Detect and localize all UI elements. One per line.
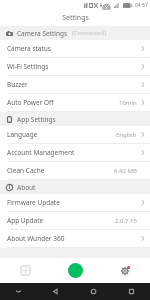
staticText: Firmware Update — [7, 198, 60, 207]
button[interactable]: Albums — [0, 258, 50, 283]
staticText: 2.0.7.15 — [115, 217, 137, 225]
staticText: App Update — [7, 216, 44, 225]
button[interactable]: Wi-Fi Settings — [0, 58, 150, 75]
staticText: App Settings — [17, 115, 56, 124]
staticText: About — [17, 183, 36, 192]
button[interactable]: Hide keyboard — [0, 283, 37, 300]
button[interactable]: About Wunder 360 — [0, 230, 150, 247]
staticText: Account Management — [7, 148, 75, 157]
button[interactable]: Camera status — [0, 40, 150, 57]
button[interactable]: Firmware Update — [0, 194, 150, 211]
button[interactable]: Recents — [112, 283, 150, 300]
staticText: Camera status — [7, 44, 51, 53]
button[interactable]: Home — [74, 283, 112, 300]
button[interactable]: Account Management — [0, 144, 150, 161]
button[interactable]: Back — [37, 283, 74, 300]
staticText: (Connected) — [72, 29, 106, 37]
staticText: Language — [7, 130, 38, 139]
button[interactable]: Settings — [100, 258, 150, 283]
staticText: Wi-Fi Settings — [7, 62, 49, 71]
staticText: Auto Power Off — [7, 98, 54, 107]
staticText: Clean Cache — [7, 166, 45, 175]
button[interactable]: Capture — [50, 258, 100, 283]
button[interactable]: Language — [0, 126, 150, 143]
staticText: 04:57 — [135, 2, 148, 9]
staticText: 6.42 MB — [114, 167, 137, 175]
staticText: Buzzer — [7, 80, 28, 89]
staticText: 10min — [119, 99, 137, 107]
staticText: English — [116, 131, 137, 139]
staticText: Camera Settings — [17, 29, 68, 38]
button[interactable]: Buzzer — [0, 76, 150, 93]
staticText: Settings — [62, 13, 89, 23]
staticText: About Wunder 360 — [7, 234, 65, 243]
button[interactable]: Auto Power Off — [0, 94, 150, 111]
button[interactable]: App Update — [0, 212, 150, 229]
button[interactable]: Clean Cache — [0, 162, 150, 179]
